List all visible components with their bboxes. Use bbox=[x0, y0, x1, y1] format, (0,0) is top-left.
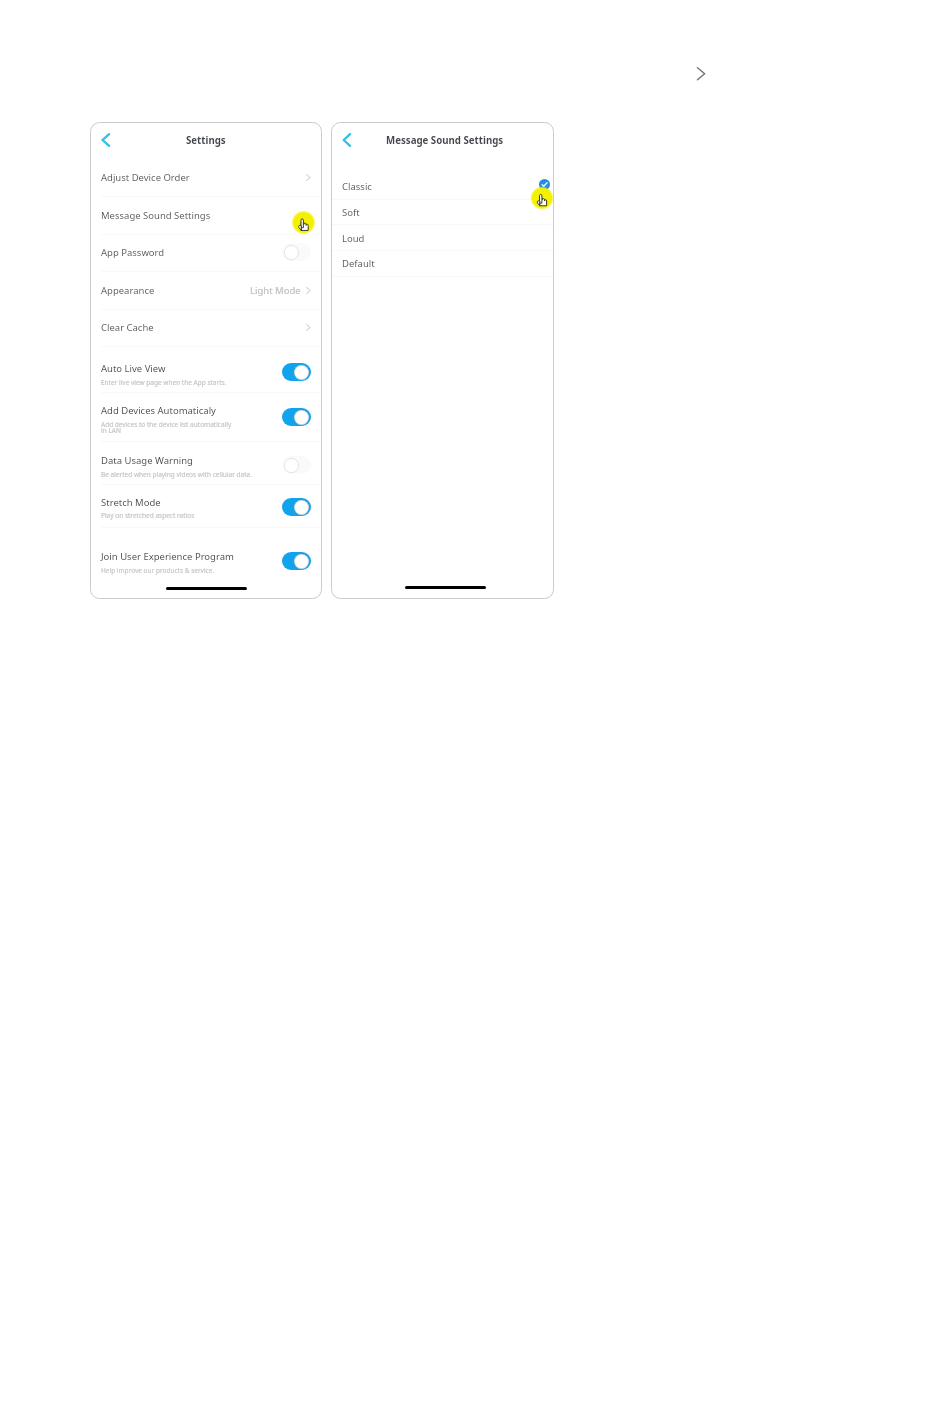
staticText: Add devices to the device list automatic… bbox=[101, 420, 232, 435]
button[interactable]: Auto Live View bbox=[90, 361, 322, 389]
staticText: App Password bbox=[101, 246, 165, 259]
button[interactable]: Message Sound Settings bbox=[90, 197, 322, 234]
other: Selected bbox=[539, 179, 550, 190]
staticText: Clear Cache bbox=[101, 321, 154, 334]
staticText: Message Sound Settings bbox=[386, 134, 504, 147]
staticText: Adjust Device Order bbox=[101, 171, 190, 184]
button[interactable]: Back bbox=[95, 129, 117, 151]
button[interactable]: Data Usage Warning bbox=[90, 453, 322, 480]
button[interactable]: Switch on bbox=[282, 498, 311, 516]
button[interactable]: App Password bbox=[90, 234, 322, 271]
staticText: Loud bbox=[342, 232, 365, 245]
button[interactable]: Add Devices Automaticaly bbox=[90, 403, 322, 434]
button[interactable]: Switch off bbox=[282, 243, 311, 261]
staticText: Play on stretched aspect ratios bbox=[101, 511, 195, 520]
staticText: Help improve our products & service. bbox=[101, 566, 215, 575]
button[interactable]: Join User Experience Program bbox=[90, 549, 322, 576]
staticText: Stretch Mode bbox=[101, 496, 161, 509]
staticText: Settings bbox=[186, 134, 226, 147]
button[interactable]: Classic bbox=[331, 173, 554, 199]
staticText: Join User Experience Program bbox=[101, 550, 234, 563]
button[interactable]: Back bbox=[336, 129, 358, 151]
button[interactable]: Adjust Device Order bbox=[90, 159, 322, 196]
staticText: Be alerted when playing videos with cell… bbox=[101, 470, 252, 479]
button[interactable]: Default bbox=[331, 250, 554, 276]
staticText: Soft bbox=[342, 206, 360, 219]
staticText: Classic bbox=[342, 180, 372, 193]
button[interactable]: Soft bbox=[331, 199, 554, 225]
staticText: Enter live view page when the App starts… bbox=[101, 378, 227, 387]
staticText: Appearance bbox=[101, 284, 155, 297]
button[interactable]: Switch off bbox=[282, 456, 311, 474]
button[interactable]: Clear Cache bbox=[90, 309, 322, 346]
button[interactable]: Appearance bbox=[90, 272, 322, 309]
staticText: Message Sound Settings bbox=[101, 209, 211, 222]
button[interactable]: Stretch Mode bbox=[90, 495, 322, 522]
button[interactable]: Switch on bbox=[282, 552, 311, 570]
button[interactable]: Switch on bbox=[282, 363, 311, 381]
staticText: Light Mode bbox=[250, 284, 301, 297]
button[interactable]: Next step bbox=[691, 61, 715, 85]
staticText: Data Usage Warning bbox=[101, 454, 193, 467]
staticText: Add Devices Automaticaly bbox=[101, 404, 216, 417]
button[interactable]: Loud bbox=[331, 225, 554, 251]
staticText: Default bbox=[342, 257, 375, 270]
staticText: Auto Live View bbox=[101, 362, 166, 375]
button[interactable]: Switch on bbox=[282, 408, 311, 426]
